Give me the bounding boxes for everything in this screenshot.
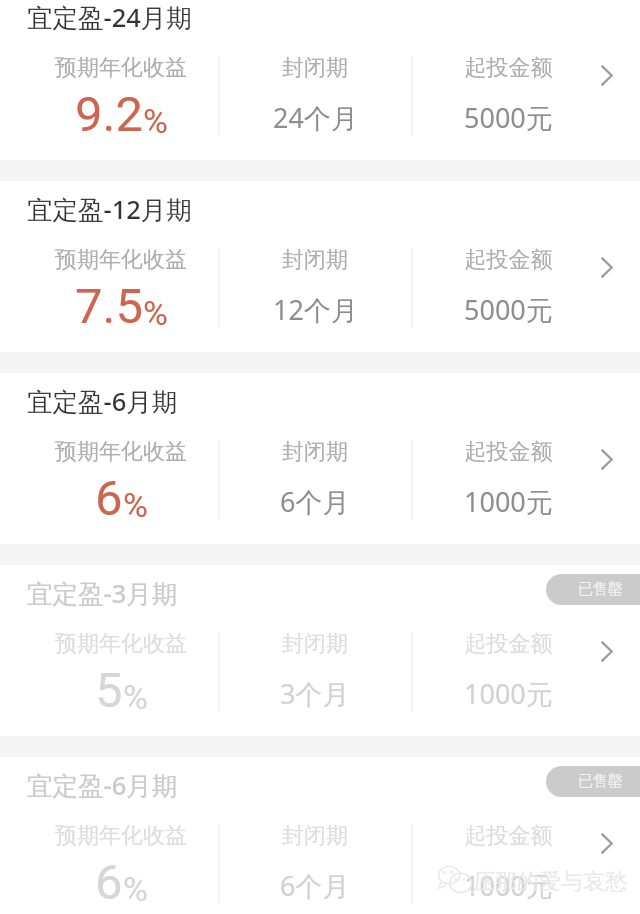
staticText: 起投金额: [412, 246, 605, 274]
button[interactable]: 查看详情: [589, 249, 625, 285]
button[interactable]: 查看详情: [589, 441, 625, 477]
staticText: 5000元: [464, 99, 553, 136]
staticText: 1000元: [464, 867, 553, 904]
staticText: 9.2: [75, 86, 143, 136]
staticText: 已售罄: [578, 580, 623, 599]
staticText: 宜定盈-6月期: [27, 384, 178, 419]
staticText: 7.5: [75, 278, 143, 328]
staticText: 24个月: [273, 99, 358, 136]
staticText: 1000元: [464, 675, 553, 712]
staticText: 宜定盈-6月期: [27, 768, 178, 803]
staticText: 6个月: [280, 483, 350, 520]
staticText: 起投金额: [412, 630, 605, 658]
staticText: 6个月: [280, 867, 350, 904]
staticText: 起投金额: [412, 822, 605, 850]
button[interactable]: 已售罄: [546, 766, 640, 797]
button[interactable]: 宜定盈-3月期: [0, 565, 640, 736]
button[interactable]: 查看详情: [589, 633, 625, 669]
staticText: 封闭期: [219, 630, 411, 658]
staticText: %: [143, 293, 168, 333]
staticText: 预期年化收益: [24, 246, 218, 274]
staticText: 压那的爱与哀愁: [473, 868, 627, 896]
staticText: 12个月: [273, 291, 358, 328]
staticText: %: [123, 869, 148, 909]
staticText: 6: [95, 854, 123, 904]
button[interactable]: 宜定盈-6月期: [0, 373, 640, 544]
button[interactable]: 宜定盈-24月期: [0, 0, 640, 160]
staticText: %: [123, 677, 148, 717]
button[interactable]: 查看详情: [589, 825, 625, 861]
staticText: 5: [95, 662, 123, 712]
staticText: 已售罄: [578, 772, 623, 791]
staticText: 起投金额: [412, 438, 605, 466]
staticText: 封闭期: [219, 438, 411, 466]
staticText: %: [123, 485, 148, 525]
staticText: 1000元: [464, 483, 553, 520]
staticText: 预期年化收益: [24, 822, 218, 850]
staticText: 预期年化收益: [24, 630, 218, 658]
staticText: 6: [95, 470, 123, 520]
staticText: 预期年化收益: [24, 54, 218, 82]
staticText: 封闭期: [219, 246, 411, 274]
button[interactable]: 查看详情: [589, 57, 625, 93]
staticText: 宜定盈-12月期: [27, 192, 192, 227]
button[interactable]: 宜定盈-12月期: [0, 181, 640, 352]
staticText: 5000元: [464, 291, 553, 328]
staticText: 封闭期: [219, 822, 411, 850]
staticText: %: [143, 101, 168, 141]
staticText: 预期年化收益: [24, 438, 218, 466]
staticText: 宜定盈-24月期: [27, 0, 192, 35]
staticText: 封闭期: [219, 54, 411, 82]
button[interactable]: 已售罄: [546, 574, 640, 605]
staticText: 3个月: [280, 675, 350, 712]
button[interactable]: 宜定盈-6月期: [0, 757, 640, 914]
staticText: 起投金额: [412, 54, 605, 82]
staticText: 宜定盈-3月期: [27, 576, 178, 611]
